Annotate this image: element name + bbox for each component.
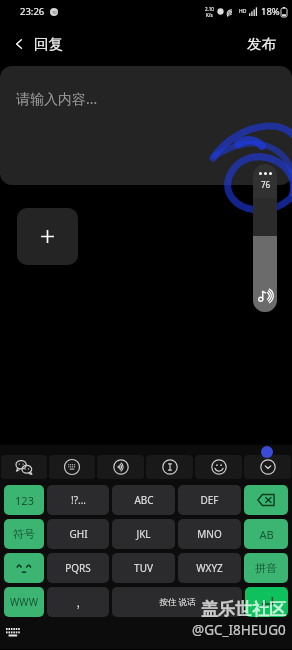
button[interactable]: Enter [245,587,288,617]
staticText: !?… [71,493,86,507]
staticText: MNO [197,527,222,541]
other: Emoticons [13,562,35,574]
staticText: ， [72,595,84,610]
staticText: K/s [206,12,213,18]
button[interactable]: ， [47,587,109,617]
button[interactable]: 按住 说话 [112,587,242,617]
button[interactable]: 回复 [0,27,75,61]
button[interactable]: Voice [97,455,144,479]
staticText: @GC_I8HEUG0 [192,621,286,639]
button[interactable]: 请输入内容... [0,66,292,185]
button[interactable]: Text [146,455,193,479]
staticText: 符号 [13,527,35,541]
staticText: WXYZ [196,561,223,575]
staticText: 发布 [247,35,276,53]
staticText: 2.10 [205,6,214,12]
staticText: TUV [134,561,153,575]
staticText: 18% [261,5,280,18]
button[interactable]: Emoticons [4,553,44,583]
staticText: 76 [261,179,271,190]
button[interactable]: WWW [4,587,44,617]
button[interactable]: PQRS [47,553,109,583]
button[interactable]: Keyboard [49,455,95,479]
button[interactable]: Sticker [1,455,47,479]
staticText: JKL [136,527,151,541]
button[interactable]: WXYZ [178,553,241,583]
button[interactable]: AB [244,519,288,549]
button[interactable]: MNO [178,519,241,549]
button[interactable]: 符号 [4,519,44,549]
button[interactable]: Hide keyboard [244,455,291,479]
staticText: 盖乐世社区 [201,599,286,620]
button[interactable]: JKL [112,519,175,549]
button[interactable]: TUV [112,553,175,583]
button[interactable]: Emoji [195,455,242,479]
button[interactable]: More volume options [253,164,277,198]
button[interactable]: 123 [4,485,44,515]
button[interactable]: !?… [47,485,109,515]
button[interactable]: Switch keyboard [2,624,26,642]
button[interactable]: Add image [17,208,78,265]
staticText: 请输入内容... [16,89,98,108]
button[interactable]: DEF [178,485,241,515]
staticText: PQRS [65,561,91,575]
staticText: 回复 [34,35,63,53]
button[interactable]: GHI [47,519,109,549]
staticText: ABC [134,493,154,507]
staticText: 10 [52,10,57,15]
staticText: AB [259,527,274,542]
staticText: WWW [10,595,38,609]
staticText: DEF [200,493,219,507]
staticText: 23:26 [20,5,45,18]
staticText: 按住 说话 [159,596,196,608]
staticText: GHI [69,527,88,541]
button[interactable]: Backspace [244,485,288,515]
button[interactable]: ABC [112,485,175,515]
other: Enter [258,594,276,610]
staticText: HD [239,8,247,15]
staticText: 拼音 [255,561,277,575]
button[interactable]: 发布 [235,27,292,61]
button[interactable]: Volume [253,198,277,312]
other: Backspace [257,492,275,508]
button[interactable]: 拼音 [244,553,288,583]
staticText: 123 [15,493,34,508]
